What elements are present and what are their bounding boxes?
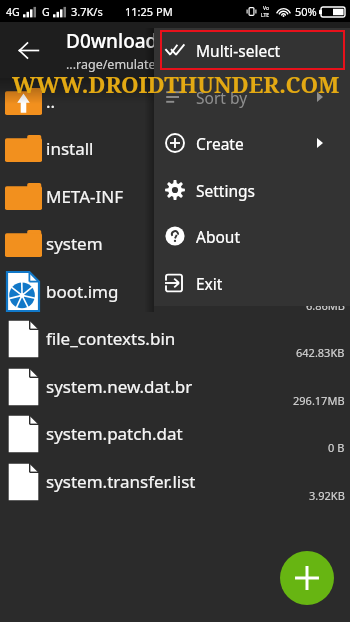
button[interactable]: About	[154, 213, 350, 259]
button[interactable]: boot.img	[0, 268, 350, 315]
staticText: boot.img	[46, 280, 119, 303]
button[interactable]: META-INF	[0, 173, 350, 220]
staticText: 4G	[6, 5, 20, 19]
staticText: ...rage/emulated/0/D0wnload	[66, 56, 240, 73]
staticText: META-INF	[46, 185, 123, 208]
staticText: 3.92KB	[309, 488, 345, 503]
staticText: LTE	[261, 12, 270, 19]
staticText: About	[196, 226, 240, 247]
button[interactable]: Create	[154, 120, 350, 166]
button[interactable]: system	[0, 220, 350, 267]
staticText: install	[46, 137, 94, 160]
staticText: 3.7K/s	[71, 4, 103, 19]
staticText: ..	[46, 90, 56, 113]
button[interactable]: Multi-select	[154, 27, 350, 73]
staticText: system.transfer.list	[46, 470, 196, 493]
button[interactable]: file_contexts.bin	[0, 315, 350, 362]
staticText: system.patch.dat	[46, 422, 183, 445]
staticText: 50%	[295, 4, 317, 19]
staticText: Settings	[196, 180, 255, 201]
button[interactable]: Settings	[154, 167, 350, 213]
staticText: system	[46, 232, 103, 255]
staticText: WWW.DROIDTHUNDER.COM	[12, 69, 340, 100]
staticText: file_contexts.bin	[46, 327, 176, 350]
staticText: D0wnload	[66, 28, 158, 54]
button[interactable]: system.transfer.list	[0, 458, 350, 505]
staticText: 11:25 PM	[125, 4, 173, 19]
staticText: G	[42, 5, 50, 19]
button[interactable]: Exit	[154, 260, 350, 306]
button[interactable]: ..	[0, 78, 350, 125]
staticText: 0 B	[328, 440, 345, 455]
staticText: 642.83KB	[296, 345, 345, 360]
staticText: system.new.dat.br	[46, 375, 193, 398]
button[interactable]: system.new.dat.br	[0, 363, 350, 410]
button[interactable]: system.patch.dat	[0, 410, 350, 457]
button[interactable]: Add	[280, 551, 334, 605]
button[interactable]: Back	[6, 28, 50, 72]
staticText: Sort by	[196, 87, 248, 108]
staticText: Create	[196, 133, 244, 154]
button[interactable]: Sort by	[154, 74, 350, 120]
staticText: Multi-select	[196, 40, 281, 61]
staticText: 296.17MB	[293, 393, 345, 408]
staticText: Exit	[196, 273, 223, 294]
button[interactable]: install	[0, 125, 350, 172]
staticText: 6.86MB	[306, 298, 345, 313]
staticText: Vo	[263, 5, 269, 12]
